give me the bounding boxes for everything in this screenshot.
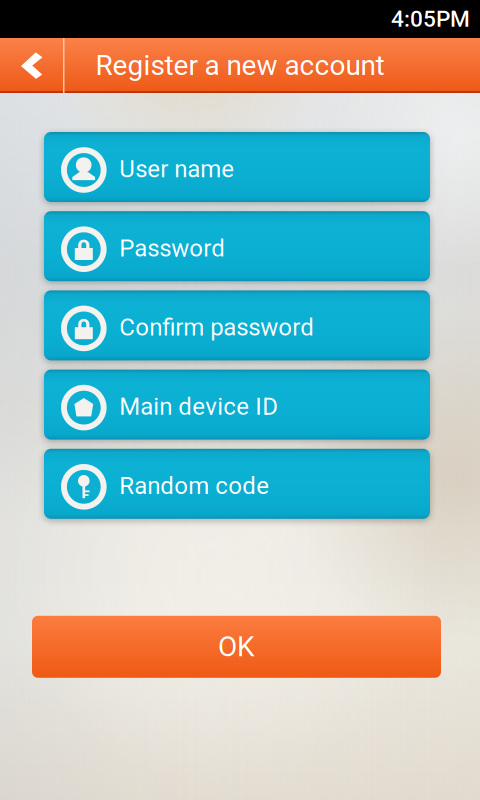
staticText: Password xyxy=(119,234,225,262)
staticText: Register a new account xyxy=(95,49,384,82)
button[interactable]: Main device ID xyxy=(44,370,430,440)
staticText: OK xyxy=(218,630,255,663)
staticText: Main device ID xyxy=(119,392,278,421)
staticText: Random code xyxy=(119,472,269,500)
button[interactable]: Random code xyxy=(44,449,430,519)
button[interactable]: User name xyxy=(44,132,430,202)
staticText: 4:05PM xyxy=(391,6,470,32)
staticText: User name xyxy=(119,155,234,183)
button[interactable]: Password xyxy=(44,211,430,281)
staticText: Confirm password xyxy=(119,313,314,341)
button[interactable]: Confirm password xyxy=(44,290,430,360)
button[interactable]: Back xyxy=(0,38,63,93)
button[interactable]: OK xyxy=(32,616,441,678)
